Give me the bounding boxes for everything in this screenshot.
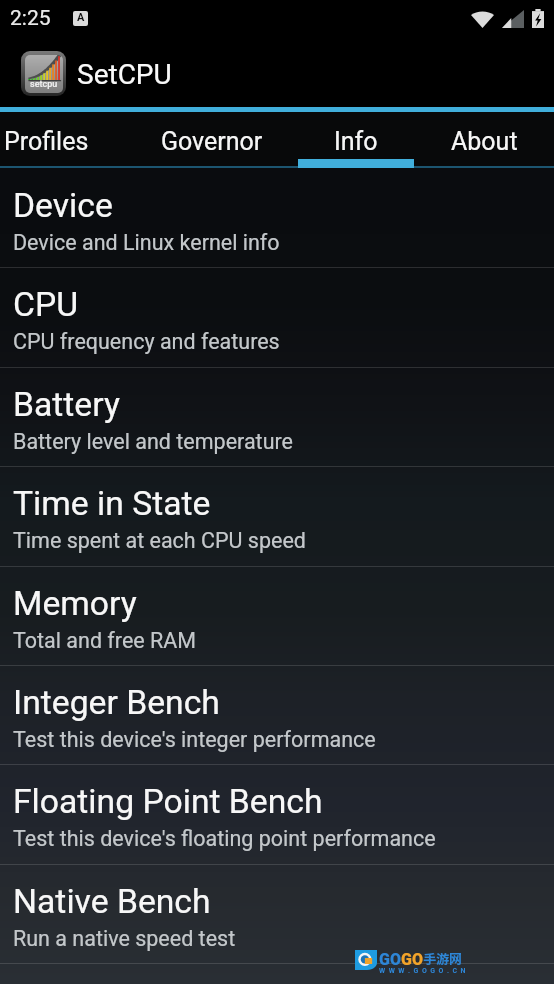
- other: Battery charging: [532, 9, 544, 28]
- button[interactable]: Native Bench: [0, 865, 554, 964]
- other: Wi-Fi signal: [471, 10, 494, 28]
- staticText: Run a native speed test: [13, 926, 236, 951]
- staticText: Battery level and temperature: [13, 429, 293, 454]
- staticText: GO: [379, 950, 401, 969]
- staticText: W W W . G O G O . C N: [379, 967, 467, 975]
- staticText: Test this device's integer performance: [13, 727, 376, 752]
- button[interactable]: Floating Point Bench: [0, 765, 554, 865]
- staticText: Integer Bench: [13, 683, 220, 722]
- other: Mobile signal: [502, 10, 524, 28]
- staticText: setcpu: [30, 79, 58, 90]
- staticText: About: [451, 127, 518, 156]
- staticText: Memory: [13, 584, 137, 623]
- staticText: Device: [13, 186, 113, 225]
- button[interactable]: Time in State: [0, 467, 554, 567]
- staticText: Time spent at each CPU speed: [13, 528, 306, 553]
- button[interactable]: CPU: [0, 268, 554, 368]
- staticText: Native Bench: [13, 882, 211, 921]
- staticText: Info: [334, 127, 378, 156]
- staticText: Profiles: [4, 127, 89, 156]
- staticText: CPU frequency and features: [13, 329, 280, 354]
- button[interactable]: About: [420, 112, 554, 168]
- button[interactable]: Governor: [129, 112, 284, 168]
- staticText: SetCPU: [77, 58, 172, 91]
- staticText: Device and Linux kernel info: [13, 230, 280, 255]
- staticText: Test this device's floating point perfor…: [13, 826, 436, 851]
- button[interactable]: Device: [0, 169, 554, 268]
- staticText: CPU: [13, 285, 79, 324]
- staticText: Time in State: [13, 484, 211, 523]
- staticText: Governor: [161, 127, 263, 156]
- staticText: 手游网: [423, 949, 463, 968]
- button[interactable]: Memory: [0, 567, 554, 666]
- button[interactable]: Battery: [0, 368, 554, 467]
- staticText: Floating Point Bench: [13, 782, 323, 821]
- button[interactable]: setcpu: [0, 38, 554, 107]
- button[interactable]: Integer Bench: [0, 666, 554, 765]
- staticText: Battery: [13, 385, 120, 424]
- button[interactable]: Info: [284, 112, 420, 168]
- button[interactable]: Profiles: [0, 112, 129, 168]
- staticText: A: [77, 11, 85, 24]
- staticText: GO: [401, 950, 423, 969]
- staticText: Total and free RAM: [13, 628, 197, 653]
- staticText: 2:25: [10, 6, 51, 31]
